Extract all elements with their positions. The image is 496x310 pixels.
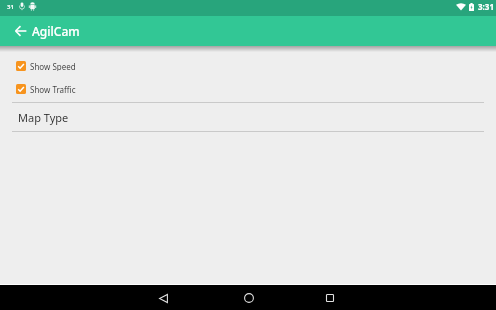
staticText: 3:31 [478, 1, 494, 12]
staticText: AgilCam [32, 23, 80, 39]
button[interactable] [244, 293, 254, 303]
button[interactable] [325, 293, 335, 303]
button[interactable] [15, 25, 27, 37]
staticText: Map Type [18, 110, 69, 125]
staticText: Show Traffic [30, 84, 76, 94]
button[interactable] [158, 293, 168, 303]
staticText: Show Speed [30, 61, 76, 71]
button[interactable]: Map Type [0, 103, 496, 131]
staticText: 31 [7, 3, 14, 11]
button[interactable]: Show Traffic [16, 84, 76, 94]
button[interactable]: Show Speed [16, 61, 76, 71]
